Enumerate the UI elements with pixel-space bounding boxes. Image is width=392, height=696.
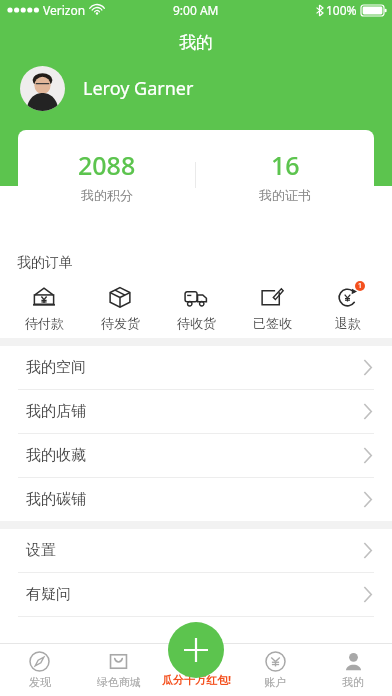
staticText: 我的订单: [17, 254, 73, 272]
button[interactable]: 1: [310, 284, 386, 331]
button[interactable]: 我的店铺: [0, 390, 392, 434]
staticText: 设置: [26, 541, 56, 560]
button[interactable]: 待收货: [158, 284, 234, 331]
button[interactable]: 发现: [0, 644, 79, 696]
staticText: 已签收: [253, 315, 292, 331]
button[interactable]: 待付款: [6, 284, 82, 331]
staticText: 我的证书: [259, 187, 311, 203]
button[interactable]: 绿色商城: [79, 644, 158, 696]
staticText: 待发货: [101, 315, 140, 331]
staticText: 100%: [326, 2, 357, 18]
staticText: Verizon: [43, 2, 86, 18]
button[interactable]: 瓜分千万红包!: [158, 644, 236, 696]
staticText: 我的收藏: [26, 446, 86, 465]
button[interactable]: 16: [196, 130, 374, 220]
staticText: 我的积分: [81, 187, 133, 203]
button[interactable]: 已签收: [234, 284, 310, 331]
button[interactable]: Leroy Garner: [20, 66, 392, 111]
button[interactable]: 我的空间: [0, 346, 392, 390]
staticText: 2088: [78, 148, 136, 182]
staticText: 发现: [29, 675, 51, 689]
staticText: 绿色商城: [97, 675, 141, 689]
button[interactable]: 2088: [18, 130, 195, 220]
staticText: 1: [358, 281, 363, 291]
staticText: Leroy Garner: [83, 76, 194, 101]
button[interactable]: 我的: [314, 644, 392, 696]
staticText: 16: [271, 148, 300, 182]
staticText: 我的: [0, 32, 392, 53]
button[interactable]: 账户: [236, 644, 314, 696]
staticText: 9:00 AM: [173, 2, 219, 18]
button[interactable]: Add: [168, 622, 224, 678]
staticText: 账户: [264, 675, 286, 689]
button[interactable]: 我的碳铺: [0, 478, 392, 521]
button[interactable]: 我的收藏: [0, 434, 392, 478]
staticText: 瓜分千万红包!: [162, 672, 232, 687]
staticText: 我的店铺: [26, 402, 86, 421]
staticText: 待收货: [177, 315, 216, 331]
staticText: 我的碳铺: [26, 490, 86, 509]
staticText: 我的空间: [26, 358, 86, 377]
button[interactable]: 有疑问: [0, 573, 392, 617]
staticText: 有疑问: [26, 585, 71, 604]
button[interactable]: 设置: [0, 529, 392, 573]
button[interactable]: 待发货: [82, 284, 158, 331]
staticText: 我的: [342, 675, 364, 689]
staticText: 待付款: [25, 315, 64, 331]
staticText: 退款: [335, 315, 361, 331]
